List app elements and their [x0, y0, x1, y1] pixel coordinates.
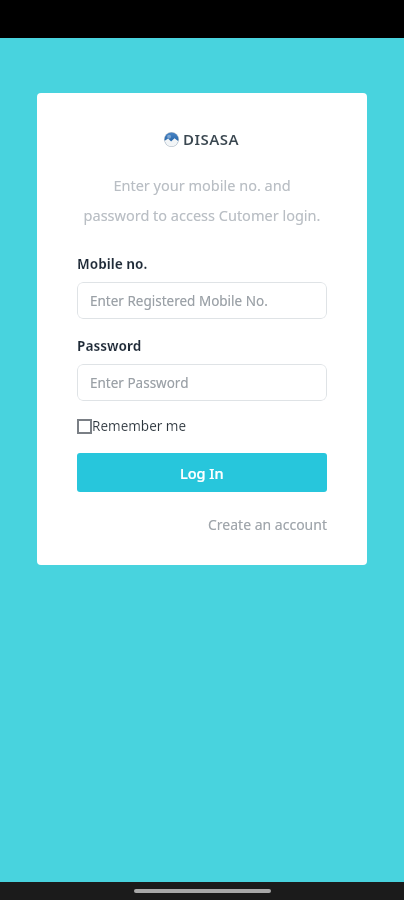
button[interactable]: Enter Registered Mobile No.	[77, 282, 327, 319]
other: DISASA logo	[164, 132, 179, 147]
staticText: Remember me	[92, 417, 187, 435]
staticText: Enter Registered Mobile No.	[90, 292, 268, 310]
staticText: Create an account	[208, 515, 327, 534]
button[interactable]: Log In	[77, 453, 327, 492]
staticText: Log In	[180, 463, 224, 483]
staticText: Enter Password	[90, 374, 189, 392]
staticText: Mobile no.	[77, 255, 148, 273]
staticText: Enter your mobile no. and password to ac…	[79, 175, 325, 225]
button[interactable]: Remember me	[77, 415, 187, 437]
button[interactable]: Create an account	[208, 512, 327, 537]
staticText: Password	[77, 337, 142, 355]
button[interactable]: Enter Password	[77, 364, 327, 401]
staticText: DISASA	[183, 129, 240, 149]
